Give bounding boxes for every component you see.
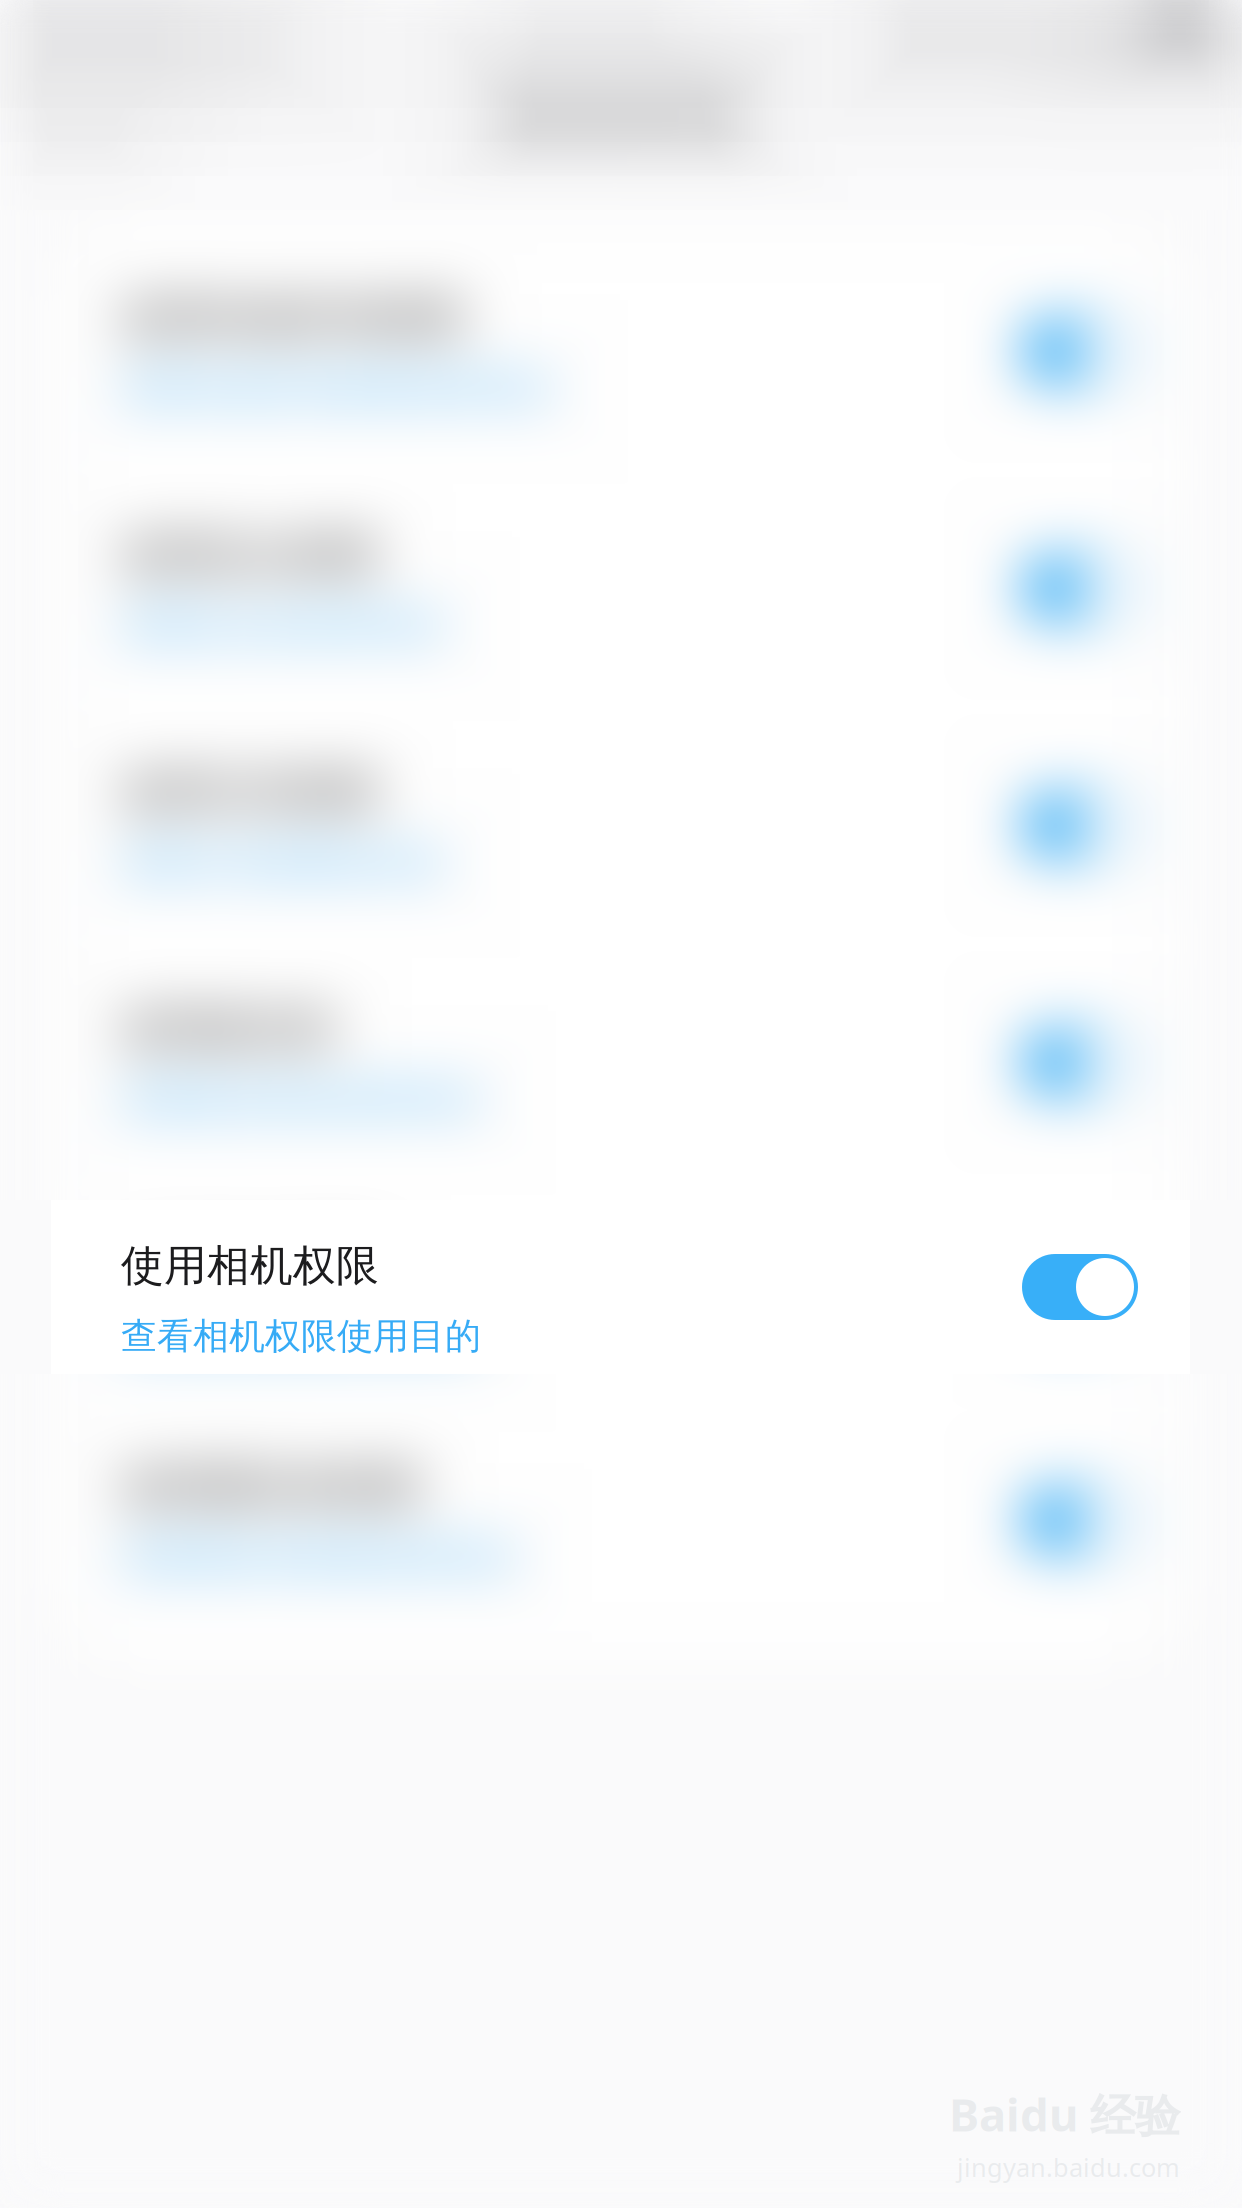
staticText: 查看日历权限的目的 — [121, 841, 445, 885]
staticText: 闹钟 蓝牙 86% — [908, 11, 1144, 55]
button[interactable]: 使用定位权限 — [51, 470, 1190, 707]
staticText: 使用日历权限 — [121, 766, 379, 819]
staticText: 使用定位权限 — [121, 529, 379, 582]
button[interactable]: 使用麦克风 — [51, 944, 1190, 1181]
staticText: 查看麦克风的使用目的 — [121, 1078, 481, 1122]
button[interactable]: 使用相机权限 — [51, 1200, 1190, 1374]
staticText: 查看相机权限使用目的 — [121, 1314, 481, 1358]
staticText: jingyan.baidu.com — [957, 2150, 1180, 2184]
button[interactable]: 返回 — [14, 62, 134, 172]
staticText: 使用存储空间权限 — [121, 292, 465, 345]
button[interactable]: 使用日历权限 — [51, 707, 1190, 944]
staticText: Baidu 经验 — [949, 2084, 1180, 2144]
staticText: 使用麦克风 — [121, 1003, 336, 1056]
staticText: 查看相机权限使用目的 — [121, 1315, 481, 1359]
staticText: 查看存储空间权限使用目的 — [121, 367, 553, 411]
button[interactable]: 使用存储空间权限 — [51, 233, 1190, 470]
staticText: 使用相机权限 — [121, 1240, 379, 1292]
staticText: 查看通讯录权限使用目的 — [121, 1536, 517, 1580]
staticText: 查看定位的使用目的 — [121, 604, 445, 648]
staticText: 使用相机权限 — [121, 1240, 379, 1293]
button[interactable]: 使用通讯录权限 — [51, 1402, 1190, 1639]
staticText: 使用通讯录权限 — [121, 1461, 422, 1514]
button[interactable]: 使用相机权限 — [51, 1181, 1190, 1418]
